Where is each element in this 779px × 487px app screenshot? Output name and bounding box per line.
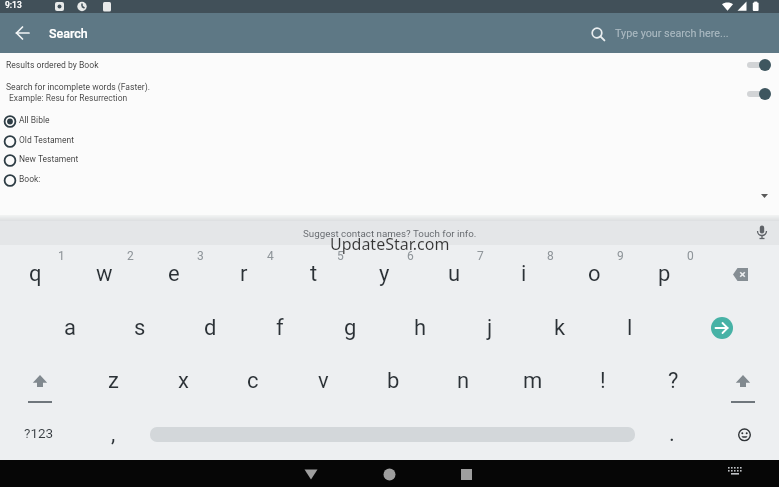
staticText: u <box>448 261 461 287</box>
staticText: , <box>111 421 116 447</box>
button[interactable]: Suggest contact names? Touch for info. <box>0 221 779 245</box>
button[interactable]: , <box>93 419 133 449</box>
button[interactable] <box>730 420 758 448</box>
button[interactable]: o <box>568 254 620 294</box>
staticText: 1 <box>58 249 65 263</box>
button[interactable]: l <box>604 308 656 348</box>
staticText: r <box>240 261 248 287</box>
staticText: j <box>487 315 493 341</box>
button[interactable]: t <box>288 254 340 294</box>
button[interactable]: . <box>652 419 692 449</box>
button[interactable]: j <box>464 308 516 348</box>
button[interactable]: m <box>507 361 559 401</box>
button[interactable]: z <box>87 361 139 401</box>
staticText: l <box>627 315 633 341</box>
staticText: h <box>414 315 427 341</box>
staticText: c <box>247 368 259 394</box>
staticText: Example: Resu for Resurrection <box>9 93 128 103</box>
button[interactable] <box>722 463 748 481</box>
button[interactable]: q <box>9 254 61 294</box>
button[interactable]: Search for incomplete words (Faster). <box>0 79 779 109</box>
button[interactable] <box>296 466 326 482</box>
button[interactable]: Results ordered by Book <box>0 55 779 77</box>
button[interactable]: e <box>148 254 200 294</box>
staticText: v <box>318 368 329 394</box>
staticText: UpdateStar.com <box>330 233 450 255</box>
button[interactable]: s <box>114 308 166 348</box>
staticText: ! <box>600 368 606 394</box>
staticText: All Bible <box>19 115 50 125</box>
staticText: i <box>521 261 527 287</box>
button[interactable]: y <box>358 254 410 294</box>
staticText: e <box>168 261 180 287</box>
staticText: 9 <box>617 249 624 263</box>
staticText: t <box>310 261 318 287</box>
staticText: 0 <box>687 249 694 263</box>
button[interactable]: New Testament <box>3 150 173 170</box>
button[interactable]: d <box>184 308 236 348</box>
button[interactable] <box>744 84 778 104</box>
staticText: g <box>344 315 357 341</box>
staticText: x <box>178 368 189 394</box>
button[interactable]: ?123 <box>9 418 69 448</box>
button[interactable] <box>716 254 764 294</box>
button[interactable]: c <box>227 361 279 401</box>
staticText: New Testament <box>19 154 79 164</box>
staticText: Suggest contact names? Touch for info. <box>303 228 477 239</box>
staticText: Book: <box>19 174 41 184</box>
button[interactable]: k <box>534 308 586 348</box>
button[interactable]: w <box>78 254 130 294</box>
staticText: Results ordered by Book <box>6 60 99 70</box>
staticText: 2 <box>127 249 134 263</box>
button[interactable]: r <box>218 254 270 294</box>
button[interactable]: x <box>157 361 209 401</box>
staticText: p <box>658 261 671 287</box>
button[interactable] <box>451 466 481 482</box>
button[interactable]: f <box>254 308 306 348</box>
staticText: 6 <box>407 249 414 263</box>
staticText: Search for incomplete words (Faster). <box>6 82 151 92</box>
staticText: z <box>108 368 119 394</box>
staticText: Search <box>49 26 88 41</box>
staticText: y <box>379 261 390 287</box>
staticText: n <box>457 368 470 394</box>
staticText: o <box>588 261 601 287</box>
button[interactable]: Type your search here... <box>585 21 755 47</box>
button[interactable]: ? <box>647 361 699 401</box>
staticText: Old Testament <box>19 135 75 145</box>
button[interactable]: i <box>498 254 550 294</box>
button[interactable]: n <box>437 361 489 401</box>
staticText: q <box>29 261 42 287</box>
button[interactable]: All Bible <box>3 111 173 131</box>
staticText: f <box>276 315 284 341</box>
button[interactable] <box>744 55 778 75</box>
button[interactable] <box>711 317 733 339</box>
button[interactable] <box>723 365 763 407</box>
button[interactable]: ! <box>577 361 629 401</box>
staticText: 4 <box>267 249 274 263</box>
button[interactable]: g <box>324 308 376 348</box>
staticText: 8 <box>547 249 554 263</box>
staticText: 7 <box>477 249 484 263</box>
button[interactable]: h <box>394 308 446 348</box>
button[interactable] <box>20 365 60 407</box>
button[interactable]: Old Testament <box>3 131 173 151</box>
staticText: k <box>554 315 566 341</box>
staticText: a <box>64 315 76 341</box>
staticText: s <box>134 315 146 341</box>
button[interactable] <box>374 466 404 482</box>
staticText: 3 <box>197 249 204 263</box>
staticText: 9:13 <box>5 0 22 10</box>
button[interactable]: Book: <box>3 170 173 190</box>
staticText: ? <box>668 368 679 394</box>
button[interactable]: b <box>367 361 419 401</box>
staticText: . <box>669 421 675 447</box>
staticText: b <box>387 368 400 394</box>
button[interactable]: v <box>297 361 349 401</box>
staticText: ?123 <box>24 425 54 441</box>
button[interactable]: a <box>44 308 96 348</box>
button[interactable]: u <box>428 254 480 294</box>
button[interactable] <box>8 19 36 47</box>
button[interactable]: p <box>638 254 690 294</box>
